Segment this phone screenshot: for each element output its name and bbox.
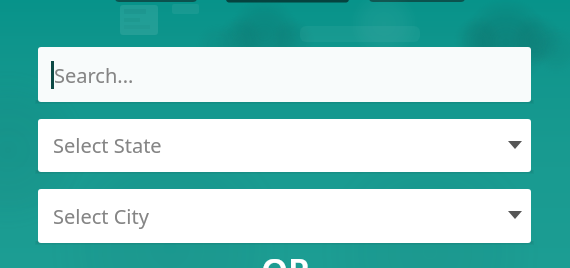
staticText: Search... xyxy=(54,62,134,89)
other: Expand Select State xyxy=(508,141,522,149)
button[interactable]: Select City xyxy=(38,189,531,243)
button[interactable]: Select State xyxy=(38,119,531,172)
button[interactable]: Search... xyxy=(38,47,531,102)
staticText: Select City xyxy=(53,203,149,230)
staticText: OR xyxy=(261,248,310,268)
staticText: Select State xyxy=(53,132,162,159)
other: Expand Select City xyxy=(508,211,522,219)
